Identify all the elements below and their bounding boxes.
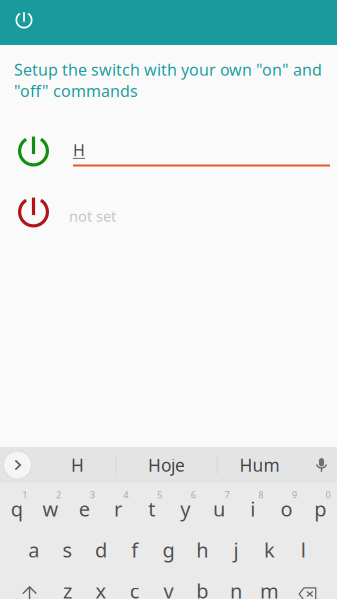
staticText: i (250, 495, 255, 522)
staticText: j (233, 536, 238, 563)
button[interactable]: f (118, 520, 152, 561)
staticText: Hum (239, 453, 279, 476)
staticText: m (260, 577, 279, 599)
staticText: z (63, 577, 72, 599)
staticText: 8 (258, 488, 263, 501)
staticText: y (180, 495, 190, 522)
staticText: x (96, 577, 107, 599)
staticText: 2 (56, 488, 61, 501)
button[interactable]: Voice input (301, 447, 337, 483)
button[interactable]: 6 (168, 479, 202, 520)
button[interactable]: 9 (270, 479, 303, 520)
staticText: 0 (326, 488, 331, 501)
button[interactable]: n (219, 561, 253, 599)
button[interactable]: z (51, 561, 84, 599)
staticText: e (79, 495, 90, 522)
staticText: o (280, 495, 292, 522)
button[interactable]: Shift (9, 561, 51, 599)
button[interactable]: 0 (303, 479, 337, 520)
button[interactable]: Backspace (286, 561, 328, 599)
staticText: u (213, 495, 225, 522)
button[interactable]: l (286, 520, 320, 561)
staticText: 3 (90, 488, 95, 501)
button[interactable]: More suggestions (0, 447, 39, 483)
staticText: H (73, 139, 85, 161)
staticText: f (131, 536, 138, 563)
staticText: d (95, 536, 107, 563)
staticText: g (162, 536, 174, 563)
staticText: 5 (157, 488, 162, 501)
button[interactable]: 1 (0, 479, 34, 520)
button[interactable]: H (39, 447, 115, 483)
staticText: w (43, 495, 59, 522)
button[interactable]: k (253, 520, 286, 561)
button[interactable]: Hoje (116, 447, 216, 483)
button[interactable]: 8 (236, 479, 270, 520)
staticText: Setup the switch with your own "on" and … (14, 59, 322, 101)
button[interactable]: a (17, 520, 51, 561)
staticText: l (301, 536, 306, 563)
button[interactable]: m (253, 561, 286, 599)
button[interactable]: d (84, 520, 118, 561)
button[interactable]: b (185, 561, 219, 599)
staticText: s (62, 536, 72, 563)
button[interactable]: Hum (217, 447, 301, 483)
staticText: b (196, 577, 208, 599)
button[interactable]: x (84, 561, 118, 599)
staticText: p (314, 495, 326, 522)
staticText: r (114, 495, 122, 522)
button[interactable]: 2 (34, 479, 67, 520)
staticText: 7 (224, 488, 229, 501)
button[interactable]: 3 (67, 479, 101, 520)
button[interactable]: v (152, 561, 185, 599)
button[interactable]: Power (0, 0, 46, 45)
staticText: 9 (292, 488, 297, 501)
button[interactable]: 7 (202, 479, 236, 520)
button[interactable]: h (185, 520, 219, 561)
staticText: k (264, 536, 275, 563)
button[interactable]: 5 (135, 479, 168, 520)
staticText: q (11, 495, 23, 522)
button[interactable]: j (219, 520, 253, 561)
button[interactable]: c (118, 561, 152, 599)
staticText: n (230, 577, 242, 599)
staticText: c (130, 577, 140, 599)
staticText: Hoje (148, 453, 185, 476)
button[interactable]: s (51, 520, 84, 561)
staticText: h (196, 536, 208, 563)
button[interactable]: 4 (101, 479, 135, 520)
button[interactable]: g (152, 520, 185, 561)
staticText: not set (69, 206, 116, 226)
staticText: 4 (123, 488, 128, 501)
staticText: v (163, 577, 173, 599)
staticText: 6 (191, 488, 196, 501)
staticText: 1 (22, 488, 27, 501)
staticText: t (148, 495, 155, 522)
staticText: H (71, 453, 84, 476)
staticText: a (28, 536, 39, 563)
